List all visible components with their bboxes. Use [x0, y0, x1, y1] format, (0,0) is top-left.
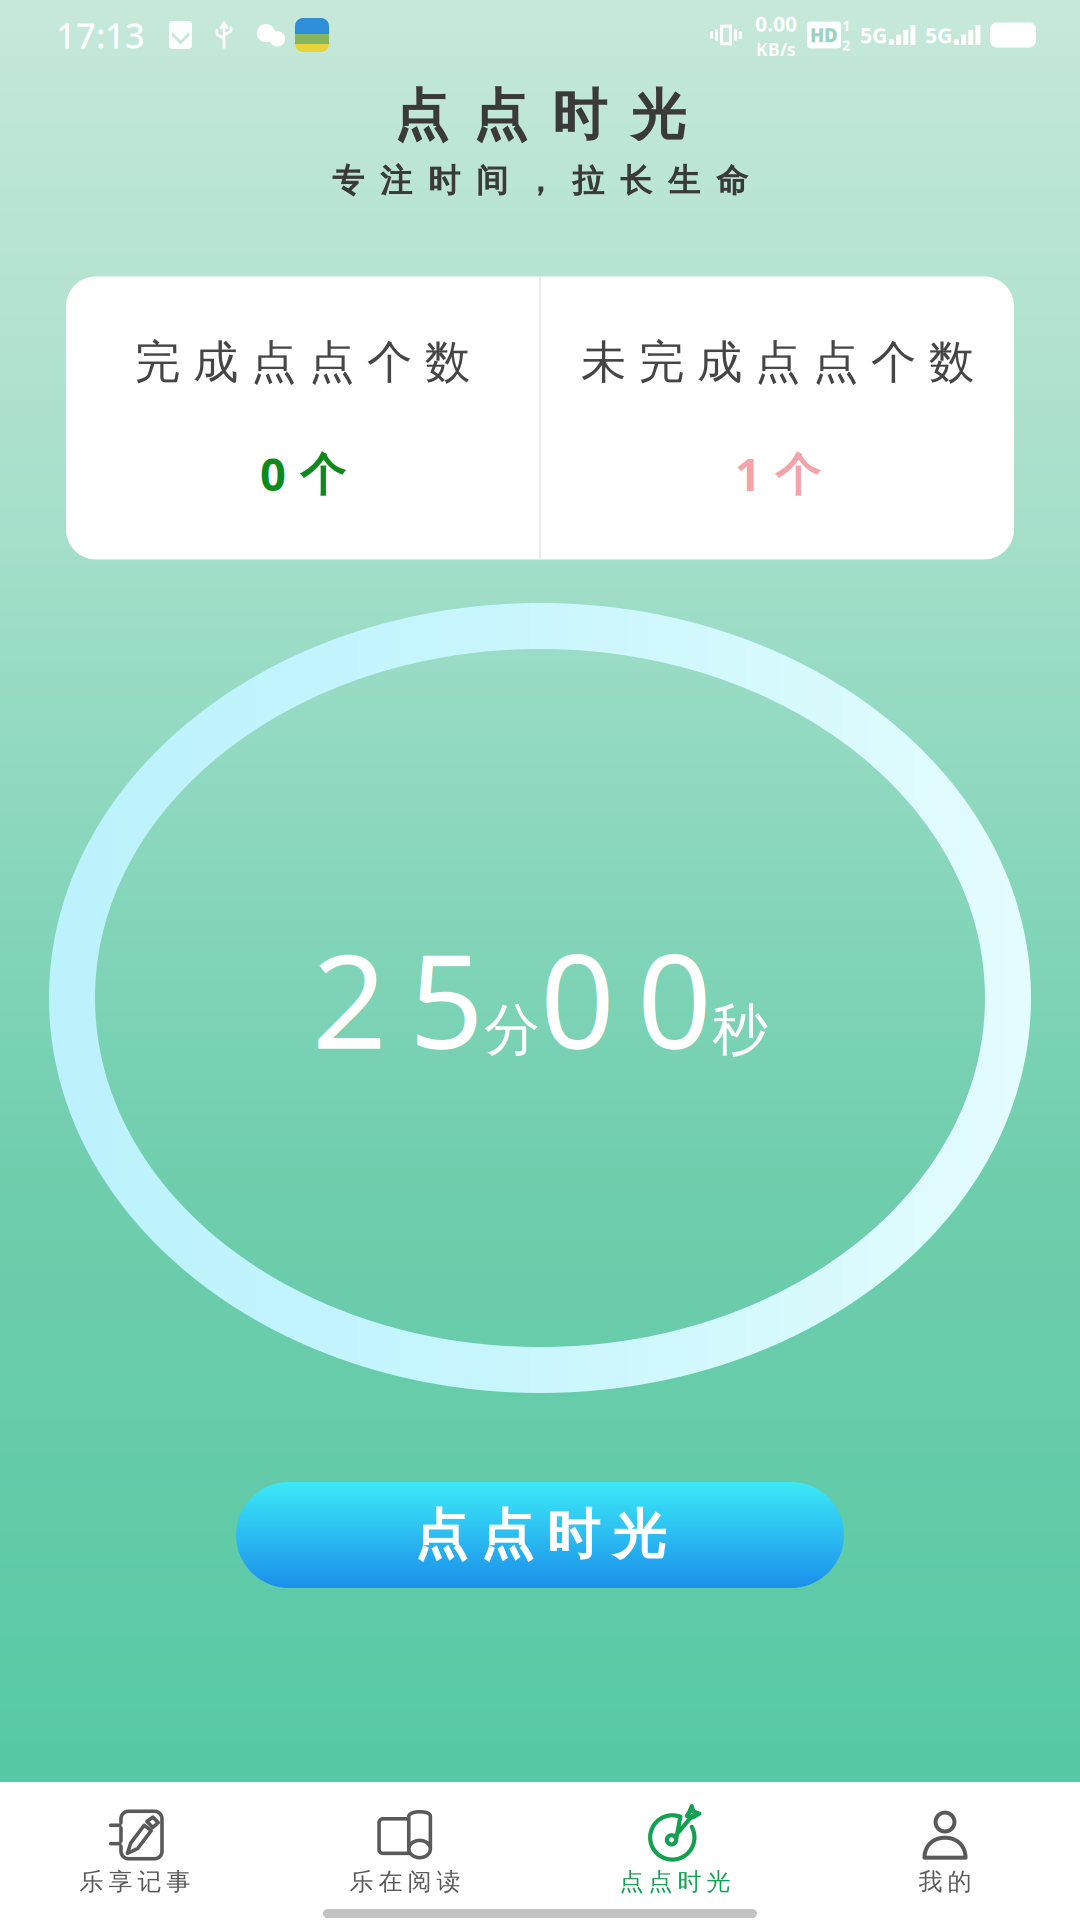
staticText: 0.00	[755, 9, 797, 38]
staticText: 乐在阅读	[349, 1867, 460, 1896]
staticText: 点点时光	[394, 82, 686, 149]
staticText: 5G	[925, 21, 952, 49]
button[interactable]: 我的	[810, 1782, 1080, 1896]
staticText: 我的	[918, 1867, 971, 1896]
staticText: 00	[540, 911, 712, 1085]
staticText: 1个	[735, 443, 820, 503]
button[interactable]: 乐享记事	[0, 1782, 270, 1896]
button[interactable]: 乐在阅读	[270, 1782, 540, 1896]
staticText: 乐享记事	[79, 1867, 190, 1896]
staticText: HD	[810, 23, 838, 47]
staticText: 未完成点点个数	[581, 334, 974, 390]
staticText: 点点时光	[619, 1867, 730, 1896]
staticText: 5G	[860, 21, 887, 49]
button[interactable]: 点点时光	[236, 1482, 844, 1588]
staticText: 分	[484, 996, 540, 1064]
staticText: 秒	[712, 996, 768, 1064]
staticText: 2	[842, 35, 850, 54]
staticText: 25	[312, 911, 484, 1085]
button[interactable]: 点点时光	[540, 1782, 810, 1896]
staticText: 专注时间，拉长生命	[332, 161, 748, 200]
staticText: KB/s	[756, 38, 796, 61]
staticText: 17:13	[56, 12, 145, 58]
staticText: 1	[842, 15, 850, 35]
staticText: 点点时光	[414, 1502, 665, 1568]
staticText: 0个	[260, 443, 345, 503]
staticText: 完成点点个数	[135, 334, 470, 390]
